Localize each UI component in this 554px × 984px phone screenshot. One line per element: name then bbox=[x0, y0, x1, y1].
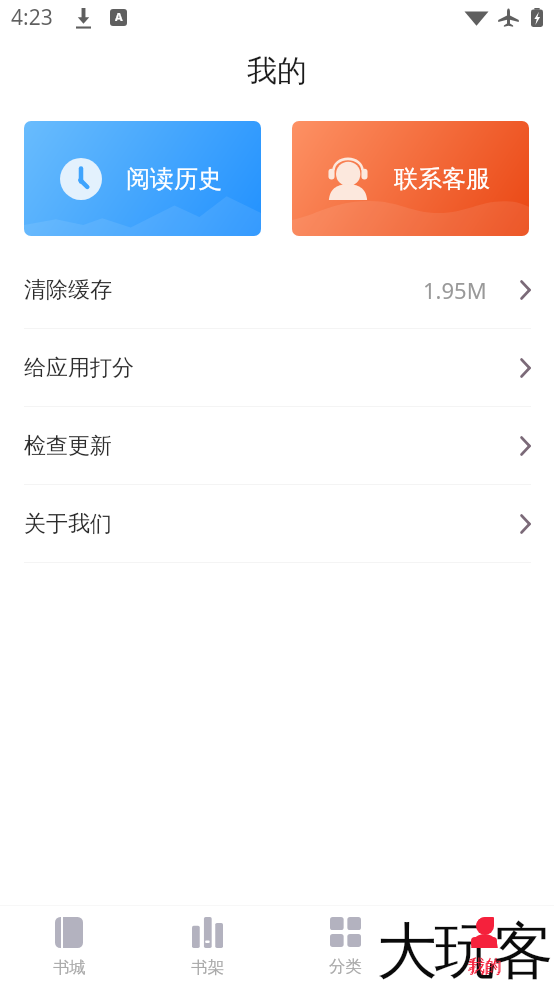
button[interactable]: 联系客服 bbox=[292, 121, 529, 236]
staticText: 书城 bbox=[53, 957, 86, 978]
button[interactable]: 书架 bbox=[138, 906, 276, 984]
button[interactable]: 给应用打分 bbox=[0, 329, 554, 407]
button[interactable]: 关于我们 bbox=[0, 485, 554, 563]
staticText: 联系客服 bbox=[394, 164, 490, 194]
button[interactable]: 清除缓存 bbox=[0, 251, 554, 329]
button[interactable]: 检查更新 bbox=[0, 407, 554, 485]
staticText: 我的 bbox=[247, 52, 307, 90]
staticText: 清除缓存 bbox=[24, 276, 112, 304]
staticText: 分类 bbox=[329, 956, 362, 977]
staticText: 检查更新 bbox=[24, 432, 112, 460]
button[interactable]: 我的 bbox=[415, 906, 554, 984]
staticText: 4:23 bbox=[11, 3, 53, 32]
staticText: A bbox=[115, 9, 123, 24]
button[interactable]: 阅读历史 bbox=[24, 121, 261, 236]
staticText: 关于我们 bbox=[24, 510, 112, 538]
button[interactable]: 分类 bbox=[276, 906, 415, 984]
staticText: 1.95M bbox=[423, 275, 487, 305]
staticText: 我的 bbox=[469, 955, 502, 976]
staticText: 我的 bbox=[468, 957, 501, 978]
staticText: 阅读历史 bbox=[126, 164, 222, 194]
staticText: 大玩客 bbox=[378, 913, 552, 983]
staticText: 书架 bbox=[191, 957, 224, 978]
staticText: 给应用打分 bbox=[24, 354, 134, 382]
button[interactable]: 书城 bbox=[0, 906, 138, 984]
